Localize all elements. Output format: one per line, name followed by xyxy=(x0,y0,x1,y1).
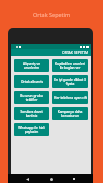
button[interactable]: Home xyxy=(47,175,55,183)
staticText: Ortak alisveris xyxy=(21,80,43,84)
button[interactable]: Kaydedilen urunleri ile baglan ver xyxy=(52,59,88,72)
button[interactable]: En iyi gunde dikkat 3 fiyata xyxy=(52,75,88,88)
button[interactable]: Recents xyxy=(70,175,78,183)
button[interactable]: Back xyxy=(23,175,31,183)
staticText: Her telefona uyan cift xyxy=(54,96,87,100)
button[interactable]: Her telefona uyan cift xyxy=(52,91,88,104)
button[interactable]: Whatsapp ile hizli paylasim xyxy=(14,123,49,136)
button[interactable]: Bu urun grubu teklifler xyxy=(14,91,49,104)
staticText: ORTAK SEPETIM xyxy=(62,50,89,55)
staticText: Bu urun grubu teklifler xyxy=(15,94,48,102)
button[interactable]: Kampanya daha konusturun xyxy=(52,107,88,120)
staticText: En iyi gunde dikkat 3 fiyata xyxy=(53,78,87,86)
staticText: Ortak Sepetim xyxy=(33,11,71,18)
staticText: Sorulara davet kartiniz xyxy=(15,110,48,118)
staticText: Kaydedilen urunleri ile baglan ver xyxy=(53,62,87,70)
button[interactable]: Alişveriş ve urunlerim xyxy=(14,59,49,72)
button[interactable]: Ortak alisveris xyxy=(14,75,49,88)
staticText: Whatsapp ile hizli paylasim xyxy=(15,126,48,134)
staticText: Alişveriş ve urunlerim xyxy=(15,62,48,70)
staticText: Kampanya daha konusturun xyxy=(53,110,87,118)
button[interactable]: Sorulara davet kartiniz xyxy=(14,107,49,120)
